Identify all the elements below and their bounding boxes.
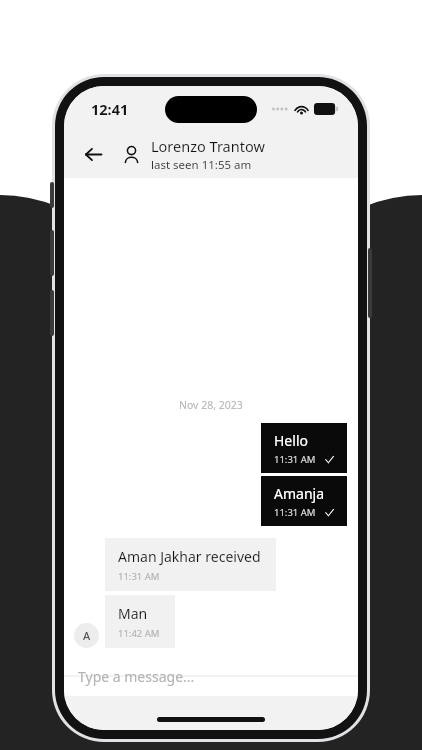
staticText: 11:31 AM: [118, 570, 160, 583]
button[interactable]: Amanja: [261, 476, 347, 526]
staticText: 11:31 AM: [274, 506, 316, 519]
button[interactable]: Hello: [261, 423, 347, 473]
staticText: A: [83, 628, 91, 643]
button[interactable]: Back: [74, 135, 112, 173]
staticText: Hello: [274, 431, 308, 450]
staticText: Nov 28, 2023: [179, 398, 243, 412]
staticText: Aman Jakhar received: [118, 547, 261, 566]
staticText: Lorenzo Trantow: [151, 136, 265, 156]
button[interactable]: Aman Jakhar received: [105, 538, 276, 591]
staticText: last seen 11:55 am: [151, 157, 252, 173]
button[interactable]: Man: [105, 595, 175, 648]
button[interactable]: Profile: [118, 141, 144, 167]
staticText: Amanja: [274, 484, 325, 503]
staticText: 11:42 AM: [118, 627, 160, 640]
staticText: Type a message...: [78, 667, 195, 686]
staticText: 11:31 AM: [274, 453, 316, 466]
staticText: 12:41: [91, 99, 129, 119]
button[interactable]: Type a message...: [64, 656, 358, 696]
staticText: Man: [118, 604, 148, 623]
button[interactable]: A: [74, 623, 99, 648]
